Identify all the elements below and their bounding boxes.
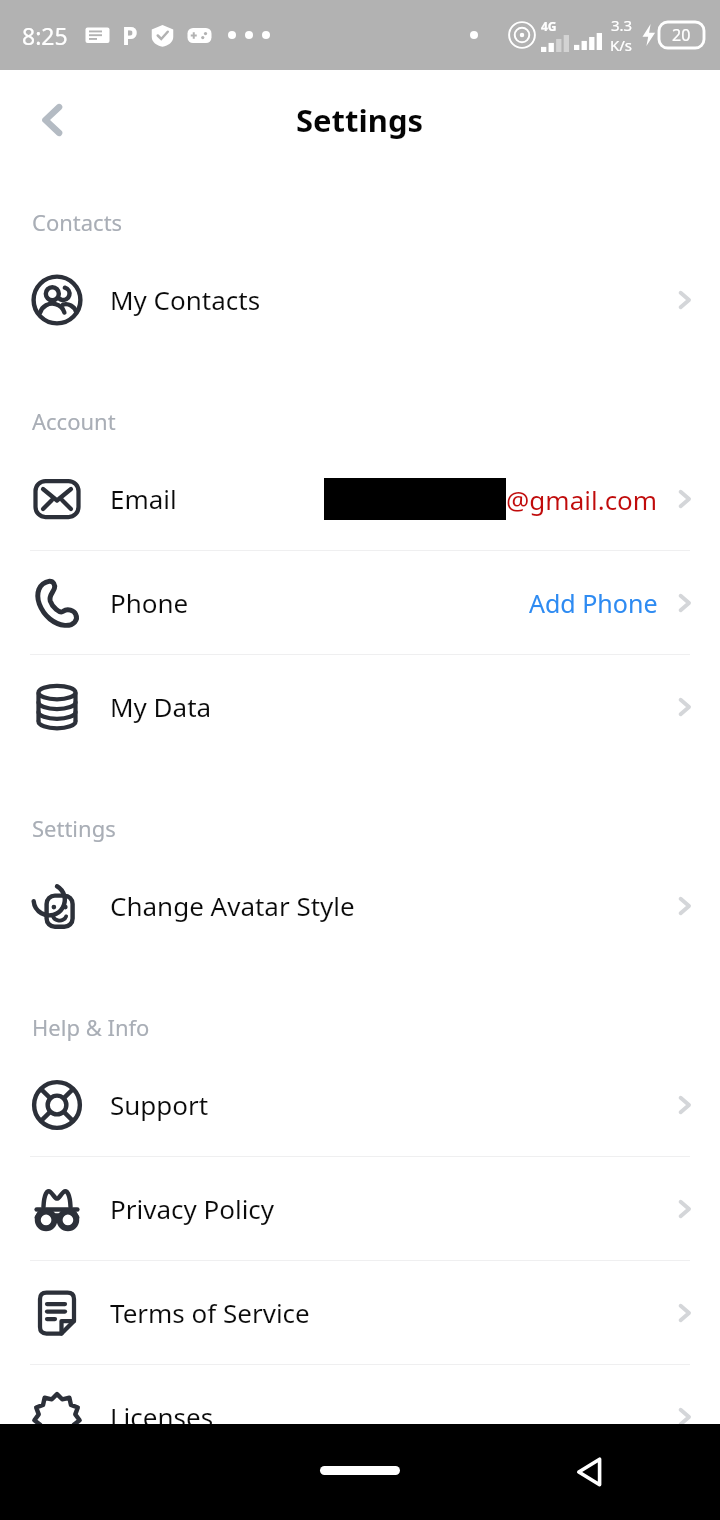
staticText: Support bbox=[110, 1087, 209, 1122]
staticText: 4G bbox=[541, 18, 557, 34]
staticText: Email bbox=[110, 481, 177, 516]
button[interactable]: Licenses bbox=[0, 1365, 720, 1468]
staticText: My Contacts bbox=[110, 282, 261, 317]
staticText: Add Phone bbox=[529, 586, 658, 620]
staticText: 8:25 bbox=[22, 20, 68, 51]
button[interactable]: Back bbox=[20, 87, 86, 153]
staticText: P bbox=[122, 18, 138, 52]
button[interactable]: Privacy Policy bbox=[0, 1157, 720, 1260]
button[interactable]: Email bbox=[0, 447, 720, 550]
staticText: @gmail.com bbox=[506, 482, 658, 517]
staticText: My Data bbox=[110, 689, 212, 724]
button[interactable]: Phone bbox=[0, 551, 720, 654]
staticText: K/s bbox=[610, 35, 633, 55]
staticText: 3.3 bbox=[611, 15, 633, 35]
staticText: Terms of Service bbox=[110, 1295, 310, 1330]
staticText: 20 bbox=[672, 24, 691, 46]
button[interactable]: My Contacts bbox=[0, 248, 720, 351]
staticText: Help & Info bbox=[32, 1012, 150, 1042]
staticText: Change Avatar Style bbox=[110, 888, 355, 923]
staticText: Licenses bbox=[110, 1399, 214, 1434]
staticText: Privacy Policy bbox=[110, 1191, 275, 1226]
staticText: Account bbox=[32, 406, 116, 436]
button[interactable]: Change Avatar Style bbox=[0, 854, 720, 957]
button[interactable]: Terms of Service bbox=[0, 1261, 720, 1364]
staticText: Settings bbox=[296, 99, 424, 141]
staticText: Phone bbox=[110, 585, 189, 620]
button[interactable]: My Data bbox=[0, 655, 720, 758]
staticText: Contacts bbox=[32, 207, 123, 237]
button[interactable]: Back bbox=[565, 1447, 615, 1497]
button[interactable]: Support bbox=[0, 1053, 720, 1156]
staticText: Settings bbox=[32, 813, 116, 843]
